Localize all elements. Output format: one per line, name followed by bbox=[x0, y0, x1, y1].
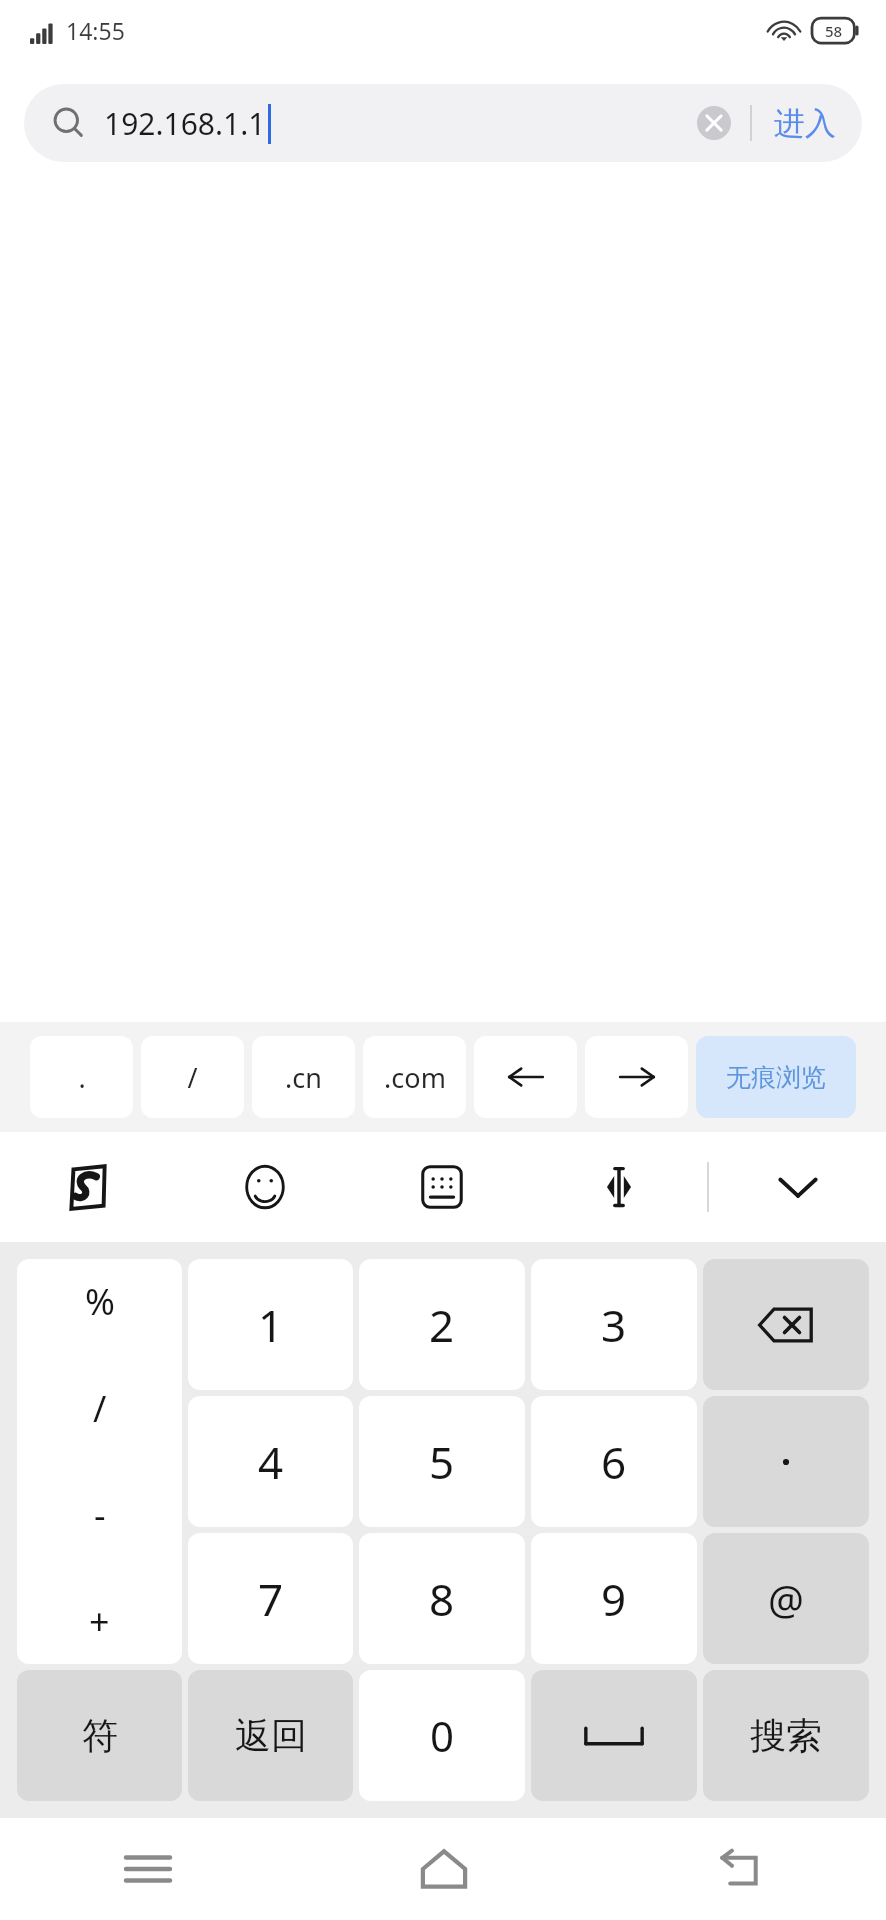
button[interactable]: 搜索 bbox=[703, 1670, 869, 1801]
staticText: .cn bbox=[285, 1059, 322, 1096]
staticText: 8 bbox=[429, 1569, 455, 1629]
button[interactable]: . bbox=[30, 1036, 133, 1118]
staticText: 0 bbox=[430, 1707, 455, 1764]
button[interactable]: 返回 bbox=[188, 1670, 353, 1801]
staticText: - bbox=[94, 1490, 106, 1539]
staticText: 6 bbox=[601, 1432, 627, 1492]
staticText: . bbox=[78, 1059, 86, 1096]
staticText: % bbox=[85, 1277, 115, 1326]
button[interactable]: 4 bbox=[188, 1396, 353, 1527]
button[interactable]: Hide keyboard bbox=[709, 1132, 886, 1242]
staticText: / bbox=[93, 1384, 107, 1433]
button[interactable]: Recents bbox=[0, 1818, 296, 1920]
staticText: 2 bbox=[429, 1295, 455, 1355]
button[interactable]: Clear bbox=[692, 101, 736, 145]
staticText: 返回 bbox=[235, 1713, 307, 1758]
staticText: @ bbox=[768, 1572, 804, 1626]
staticText: 58 bbox=[825, 21, 843, 41]
button[interactable]: 符 bbox=[17, 1670, 182, 1801]
staticText: 14:55 bbox=[66, 15, 125, 46]
button[interactable]: Home bbox=[296, 1818, 591, 1920]
button[interactable]: @ bbox=[703, 1533, 869, 1664]
staticText: 无痕浏览 bbox=[726, 1062, 826, 1093]
button[interactable]: Backspace bbox=[703, 1259, 869, 1390]
button[interactable]: 7 bbox=[188, 1533, 353, 1664]
button[interactable]: 1 bbox=[188, 1259, 353, 1390]
staticText: 搜索 bbox=[750, 1713, 822, 1758]
button[interactable]: 3 bbox=[531, 1259, 697, 1390]
staticText: + bbox=[89, 1597, 110, 1646]
staticText: 符 bbox=[82, 1713, 118, 1758]
staticText: 4 bbox=[258, 1432, 284, 1492]
staticText: 3 bbox=[601, 1295, 627, 1355]
button[interactable] bbox=[703, 1396, 869, 1527]
button[interactable]: 2 bbox=[359, 1259, 525, 1390]
button[interactable]: 8 bbox=[359, 1533, 525, 1664]
button[interactable]: Space bbox=[531, 1670, 697, 1801]
button[interactable]: 无痕浏览 bbox=[696, 1036, 856, 1118]
staticText: / bbox=[187, 1059, 198, 1096]
button[interactable]: Back bbox=[474, 1036, 577, 1118]
button[interactable]: / bbox=[141, 1036, 244, 1118]
button[interactable]: Keyboard layout bbox=[353, 1132, 530, 1242]
button[interactable]: % bbox=[17, 1259, 182, 1664]
button[interactable]: Input method bbox=[0, 1132, 176, 1242]
button[interactable]: 6 bbox=[531, 1396, 697, 1527]
other: Search bbox=[52, 106, 86, 140]
staticText: 192.168.1.1 bbox=[104, 103, 266, 144]
staticText: 9 bbox=[601, 1569, 627, 1629]
button[interactable]: Back bbox=[591, 1818, 886, 1920]
button[interactable]: Search bbox=[24, 84, 862, 162]
staticText: .com bbox=[384, 1059, 446, 1096]
button[interactable]: .com bbox=[363, 1036, 466, 1118]
staticText: 进入 bbox=[774, 104, 836, 143]
staticText: 5 bbox=[429, 1432, 455, 1492]
button[interactable]: 0 bbox=[359, 1670, 525, 1801]
staticText: 7 bbox=[258, 1569, 284, 1629]
button[interactable]: 进入 bbox=[770, 104, 840, 143]
button[interactable]: 9 bbox=[531, 1533, 697, 1664]
button[interactable]: Emoji bbox=[176, 1132, 353, 1242]
button[interactable]: Forward bbox=[585, 1036, 688, 1118]
button[interactable]: 5 bbox=[359, 1396, 525, 1527]
staticText: 1 bbox=[258, 1295, 284, 1355]
button[interactable]: .cn bbox=[252, 1036, 355, 1118]
button[interactable]: Move cursor bbox=[530, 1132, 707, 1242]
